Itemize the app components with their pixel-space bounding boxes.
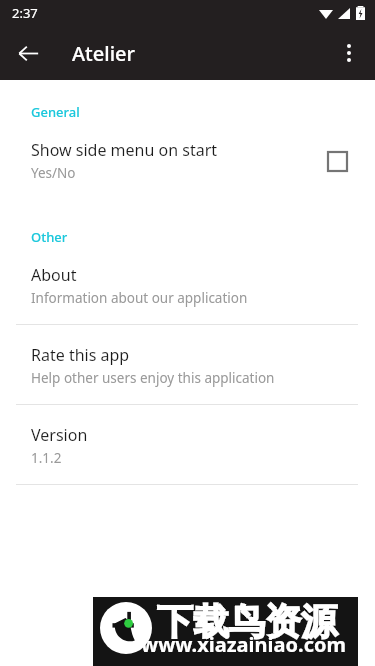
- staticText: Help other users enjoy this application: [31, 369, 275, 387]
- button[interactable]: Show side menu on start: [0, 121, 375, 196]
- button[interactable]: Back: [6, 31, 50, 75]
- button[interactable]: More options: [327, 31, 371, 75]
- staticText: Yes/No: [31, 164, 76, 182]
- staticText: Other: [31, 228, 68, 246]
- staticText: Show side menu on start: [31, 139, 218, 161]
- staticText: 下载鸟资源: [157, 599, 337, 644]
- staticText: 2:37: [12, 4, 38, 22]
- button[interactable]: Version: [0, 405, 375, 484]
- staticText: 1.1.2: [31, 449, 62, 467]
- button[interactable]: About: [0, 246, 375, 324]
- staticText: Rate this app: [31, 344, 130, 366]
- staticText: About: [31, 264, 77, 286]
- staticText: Atelier: [72, 40, 135, 67]
- button[interactable]: Show side menu on start toggle: [319, 143, 355, 179]
- staticText: General: [31, 103, 80, 121]
- button[interactable]: Rate this app: [0, 325, 375, 404]
- staticText: Information about our application: [31, 289, 248, 307]
- staticText: Version: [31, 424, 88, 446]
- staticText: www.xiazainiao.com: [141, 631, 346, 658]
